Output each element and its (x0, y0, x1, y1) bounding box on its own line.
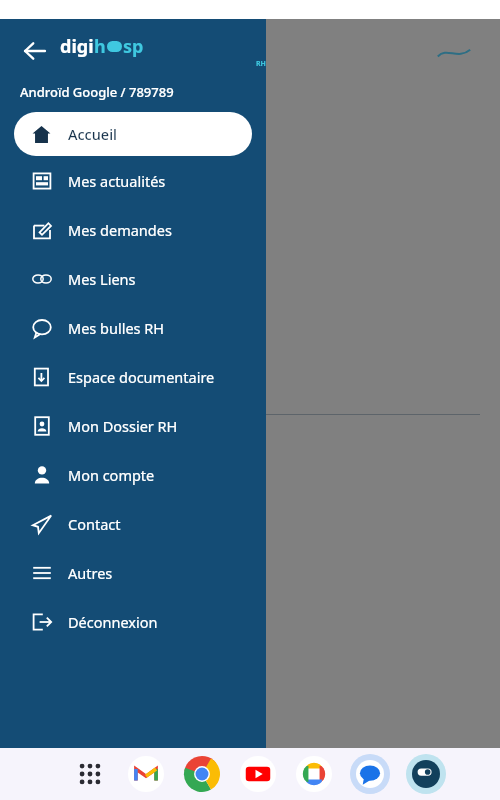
staticText: Androïd Google / 789789 (20, 83, 174, 101)
button[interactable]: digihosp RH (406, 754, 446, 794)
button[interactable] (4, 134, 68, 264)
button[interactable]: Mon compte (0, 450, 266, 499)
button[interactable]: Messages (350, 754, 390, 794)
staticText: Mes actualités (68, 171, 166, 191)
staticText: z-vous ? (2, 386, 56, 406)
staticText: Mes bulles RH (68, 318, 165, 338)
staticText: on avis (2, 627, 44, 644)
button[interactable]: Mes demandes (0, 205, 266, 254)
button[interactable]: Gmail (126, 754, 166, 794)
button[interactable]: Contact (0, 499, 266, 548)
staticText: sp (123, 34, 144, 59)
staticText: Déconnexion (68, 612, 158, 632)
button[interactable]: Déconnexion (0, 597, 266, 646)
staticText: Mon Dossier RH (68, 416, 178, 436)
staticText: Accueil (68, 124, 117, 144)
button[interactable]: Mes bulles RH (0, 303, 266, 352)
staticText: Autres (68, 563, 113, 583)
button[interactable] (92, 134, 220, 264)
staticText: digi (60, 34, 94, 59)
staticText: RH (256, 59, 266, 68)
button[interactable]: on avis (0, 615, 480, 655)
staticText: Mes Liens (126, 274, 187, 292)
staticText: Mon compte (68, 465, 155, 485)
staticText: on digihosp RH est fière de vous sa nouv… (2, 488, 227, 539)
staticText: Espace documentaire (68, 367, 215, 387)
staticText: S SUPPRIMER (26, 42, 128, 64)
button[interactable]: YouTube (238, 754, 278, 794)
button[interactable]: Mes actualités (0, 156, 266, 205)
button[interactable]: Rafraîchir (202, 102, 230, 130)
button[interactable]: Accueil (14, 112, 252, 156)
button[interactable]: Toutes les applis (70, 754, 110, 794)
staticText: Mes Liens (68, 269, 136, 289)
staticText: Mes demandes (68, 220, 172, 240)
button[interactable]: Autres (0, 548, 266, 597)
button[interactable]: Espace documentaire (0, 352, 266, 401)
button[interactable]: Chrome (182, 754, 222, 794)
button[interactable]: Photos (294, 754, 334, 794)
staticText: andes (18, 274, 55, 292)
button[interactable]: Retour (18, 34, 52, 68)
staticText: h (94, 34, 106, 59)
staticText: Contact (68, 514, 121, 534)
button[interactable]: Mes Liens (0, 254, 266, 303)
button[interactable]: Mon Dossier RH (0, 401, 266, 450)
